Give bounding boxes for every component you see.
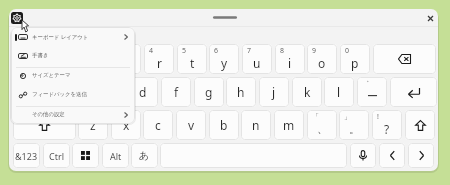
- button[interactable]: k: [292, 77, 322, 107]
- button[interactable]: Settings: [11, 12, 23, 24]
- staticText: g: [205, 84, 213, 100]
- button[interactable]: !: [372, 110, 402, 140]
- button[interactable]: g: [194, 77, 224, 107]
- button[interactable]: 4: [144, 44, 174, 74]
- button[interactable]: 6: [209, 44, 239, 74]
- staticText: キーボード レイアウト: [32, 33, 89, 40]
- staticText: フィードバックを送信: [32, 91, 87, 98]
- button[interactable]: h: [226, 77, 256, 107]
- button[interactable]: フィードバックを送信: [12, 86, 134, 104]
- button[interactable]: l: [324, 77, 354, 107]
- staticText: 8: [280, 46, 285, 56]
- staticText: r: [157, 55, 162, 71]
- button[interactable]: d: [128, 77, 158, 107]
- staticText: m: [283, 117, 295, 133]
- button[interactable]: Windows: [72, 143, 99, 168]
- staticText: f: [174, 84, 179, 100]
- staticText: &123: [15, 150, 38, 162]
- staticText: i: [288, 55, 292, 71]
- button[interactable]: x: [111, 110, 141, 140]
- button[interactable]: Voice input: [350, 143, 376, 168]
- staticText: h: [237, 84, 245, 100]
- staticText: 」: [344, 112, 351, 121]
- button[interactable]: Alt: [102, 143, 129, 168]
- staticText: 9: [312, 46, 317, 56]
- staticText: あ: [139, 149, 150, 162]
- staticText: Ctrl: [49, 150, 64, 162]
- button[interactable]: s: [96, 77, 126, 107]
- button[interactable]: Caps lock: [13, 77, 60, 107]
- staticText: e: [123, 55, 130, 71]
- button[interactable]: 手書き: [12, 47, 134, 65]
- button[interactable]: あ: [131, 143, 158, 168]
- staticText: p: [351, 55, 359, 71]
- button[interactable]: サイズとテーマ: [12, 67, 134, 85]
- button[interactable]: z: [78, 110, 108, 140]
- staticText: y: [221, 55, 228, 71]
- button[interactable]: Enter: [390, 77, 437, 107]
- button[interactable]: 9: [307, 44, 337, 74]
- staticText: a: [75, 84, 82, 100]
- staticText: x: [123, 117, 130, 133]
- staticText: サイズとテーマ: [32, 72, 71, 79]
- button[interactable]: 7: [242, 44, 272, 74]
- staticText: 「: [312, 112, 319, 121]
- button[interactable]: j: [259, 77, 289, 107]
- button[interactable]: Backspace: [373, 44, 436, 74]
- button[interactable]: 「: [307, 110, 337, 140]
- staticText: d: [139, 84, 147, 100]
- button[interactable]: Tab: [13, 44, 43, 74]
- button[interactable]: m: [274, 110, 304, 140]
- button[interactable]: Ctrl: [43, 143, 70, 168]
- button[interactable]: 」: [339, 110, 369, 140]
- button[interactable]: Shift: [13, 110, 76, 140]
- staticText: 、: [317, 122, 328, 136]
- button[interactable]: Space: [160, 143, 347, 168]
- button[interactable]: 8: [275, 44, 305, 74]
- button[interactable]: Close: [418, 10, 438, 27]
- button[interactable]: その他の設定: [12, 106, 134, 124]
- staticText: 手書き: [32, 52, 49, 59]
- button[interactable]: キーボード レイアウト: [12, 28, 134, 46]
- staticText: v: [188, 117, 195, 133]
- button[interactable]: 1: [46, 44, 76, 74]
- button[interactable]: Previous: [379, 143, 405, 168]
- staticText: b: [220, 117, 228, 133]
- staticText: n: [252, 117, 260, 133]
- button[interactable]: b: [209, 110, 239, 140]
- button[interactable]: a: [63, 77, 93, 107]
- staticText: u: [253, 55, 261, 71]
- staticText: ゛: [362, 79, 370, 88]
- button[interactable]: ゛: [357, 77, 387, 107]
- button[interactable]: &123: [13, 143, 40, 168]
- staticText: l: [337, 84, 341, 100]
- button[interactable]: f: [161, 77, 191, 107]
- button[interactable]: n: [241, 110, 271, 140]
- staticText: その他の設定: [32, 111, 65, 118]
- staticText: j: [272, 84, 276, 100]
- staticText: c: [155, 117, 161, 133]
- staticText: 4: [149, 46, 154, 56]
- button[interactable]: 5: [177, 44, 207, 74]
- staticText: !: [377, 112, 379, 122]
- button[interactable]: Next: [408, 143, 434, 168]
- button[interactable]: 3: [111, 44, 141, 74]
- staticText: k: [304, 84, 311, 100]
- staticText: t: [190, 55, 195, 71]
- staticText: z: [90, 117, 96, 133]
- staticText: ー: [367, 89, 378, 103]
- button[interactable]: 2: [78, 44, 108, 74]
- staticText: 7: [247, 46, 252, 56]
- button[interactable]: Shift: [405, 110, 435, 140]
- staticText: o: [318, 55, 326, 71]
- button[interactable]: 0: [340, 44, 370, 74]
- staticText: Alt: [110, 150, 122, 162]
- staticText: q: [57, 55, 65, 71]
- staticText: 5: [182, 46, 187, 56]
- button[interactable]: c: [143, 110, 173, 140]
- button[interactable]: v: [176, 110, 206, 140]
